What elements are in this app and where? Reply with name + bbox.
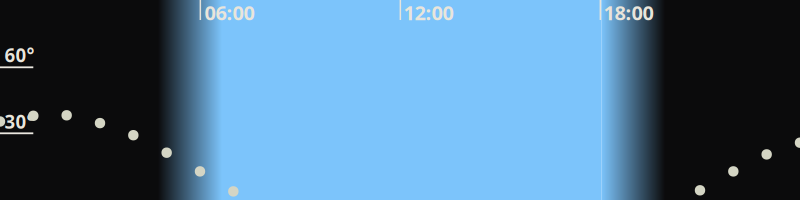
staticText: 12:00 [403,0,453,26]
staticText: 60° [4,43,34,67]
button[interactable]: Moon altitude chart [0,0,800,200]
staticText: 18:00 [603,0,653,26]
staticText: 06:00 [204,0,254,26]
staticText: 30° [4,109,34,134]
